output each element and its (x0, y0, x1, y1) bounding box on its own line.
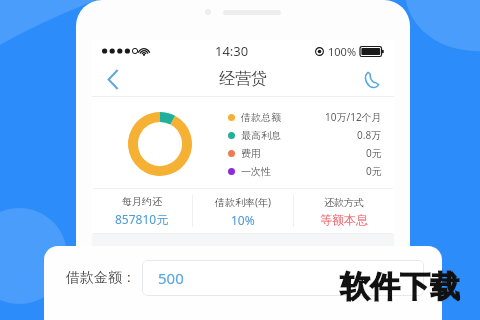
button[interactable]: 还款方式 (294, 189, 394, 233)
button[interactable]: 借款利率(年) (193, 189, 293, 233)
staticText: 经营贷 (219, 69, 267, 89)
button[interactable]: 500 (142, 260, 424, 296)
button[interactable]: Back (96, 62, 130, 96)
staticText: 还款方式 (324, 196, 364, 209)
staticText: 0元 (366, 164, 382, 178)
staticText: 一次性 (241, 165, 271, 178)
staticText: 借款金额： (66, 269, 136, 287)
button[interactable]: 最高利息 (228, 128, 382, 142)
staticText: 每月约还 (122, 195, 162, 208)
staticText: 软件下载 (340, 268, 460, 306)
staticText: 857810元 (115, 211, 169, 227)
staticText: 等额本息 (320, 212, 368, 227)
staticText: 最高利息 (241, 129, 281, 142)
staticText: 10% (231, 212, 255, 228)
staticText: 500 (158, 268, 184, 288)
staticText: 14:30 (215, 42, 249, 60)
button[interactable]: 费用 (228, 146, 382, 160)
button[interactable]: 每月约还 (92, 189, 192, 233)
button[interactable]: 借款总额 (228, 110, 382, 124)
button[interactable]: 一次性 (228, 164, 382, 178)
staticText: 借款总额 (241, 111, 281, 124)
staticText: 借款利率(年) (215, 195, 271, 209)
staticText: 10万/12个月 (325, 110, 382, 124)
staticText: 费用 (241, 147, 261, 160)
staticText: 100% (328, 44, 357, 59)
staticText: 0.8万 (357, 128, 382, 142)
button[interactable]: Call (354, 62, 388, 96)
staticText: 0元 (366, 146, 382, 160)
